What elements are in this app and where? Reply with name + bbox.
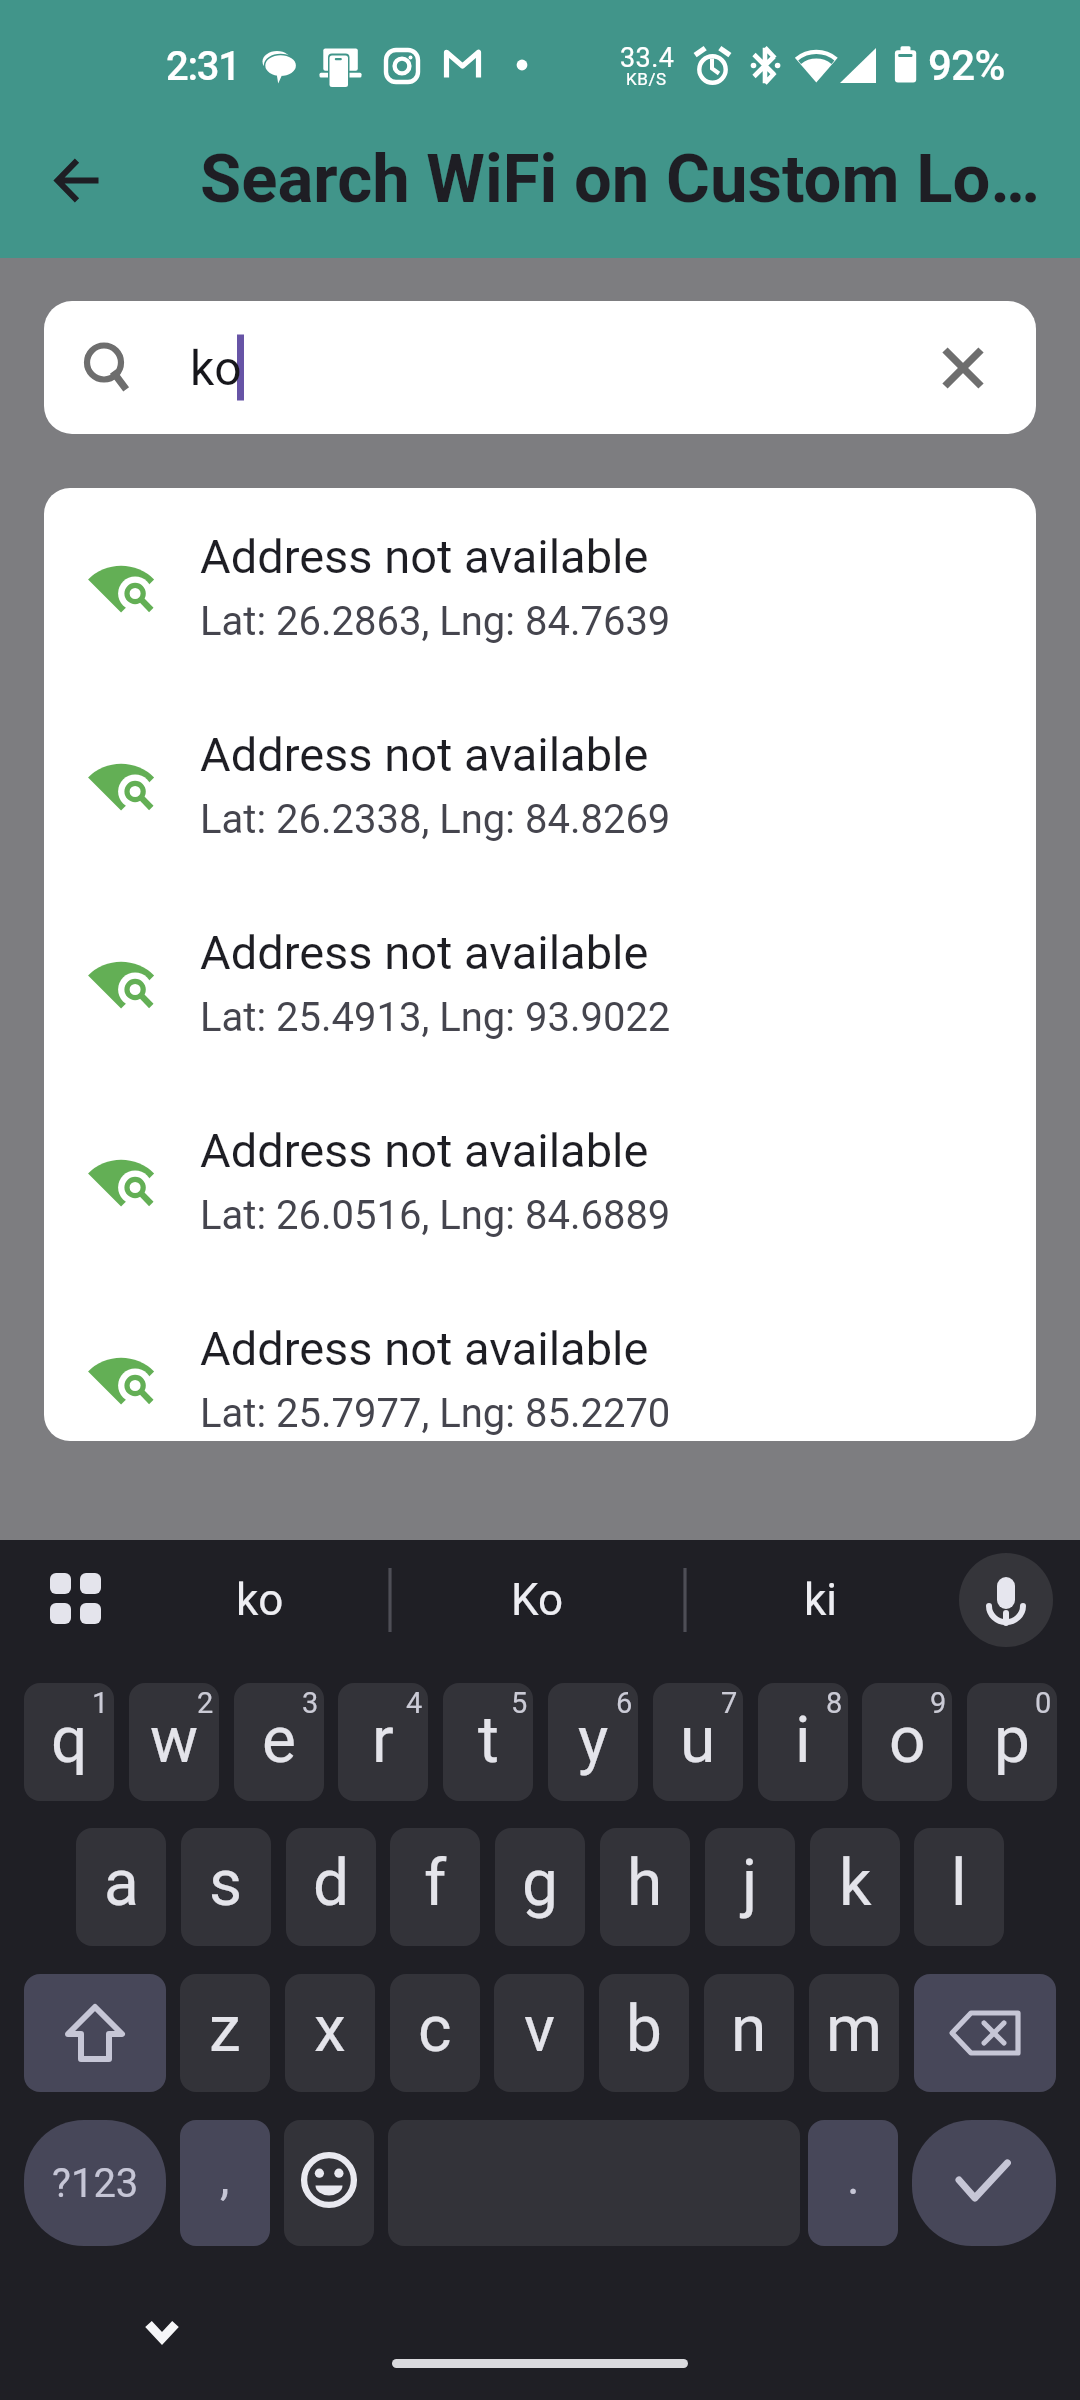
staticText: 5 xyxy=(511,1686,528,1720)
staticText: b xyxy=(626,1992,662,2067)
button[interactable]: y xyxy=(548,1683,638,1801)
button[interactable]: l xyxy=(914,1828,1004,1946)
staticText: d xyxy=(313,1846,350,1921)
staticText: i xyxy=(795,1703,811,1778)
staticText: p xyxy=(994,1703,1030,1778)
button[interactable]: x xyxy=(285,1974,375,2092)
button[interactable]: Backspace xyxy=(914,1974,1056,2092)
button[interactable]: Address not available xyxy=(44,1280,1036,1441)
staticText: h xyxy=(627,1846,663,1921)
button[interactable]: z xyxy=(180,1974,270,2092)
button[interactable]: . xyxy=(808,2120,898,2246)
staticText: 92% xyxy=(928,41,1005,90)
button[interactable]: v xyxy=(494,1974,584,2092)
button[interactable]: Shift xyxy=(24,1974,166,2092)
button[interactable]: Address not available xyxy=(44,1082,1036,1280)
button[interactable]: Address not available xyxy=(44,884,1036,1082)
button[interactable]: q xyxy=(24,1683,114,1801)
button[interactable]: t xyxy=(443,1683,533,1801)
button[interactable]: e xyxy=(234,1683,324,1801)
staticText: 1 xyxy=(92,1686,109,1720)
staticText: Address not available xyxy=(200,529,649,584)
button[interactable]: g xyxy=(495,1828,585,1946)
staticText: 0 xyxy=(1035,1686,1052,1720)
staticText: y xyxy=(578,1703,609,1778)
staticText: 4 xyxy=(406,1686,423,1720)
button[interactable]: f xyxy=(390,1828,480,1946)
button[interactable]: j xyxy=(705,1828,795,1946)
button[interactable]: Emoji xyxy=(284,2120,374,2246)
staticText: v xyxy=(524,1992,555,2067)
button[interactable]: i xyxy=(758,1683,848,1801)
staticText: Address not available xyxy=(200,925,649,980)
button[interactable]: o xyxy=(862,1683,952,1801)
button[interactable]: h xyxy=(600,1828,690,1946)
button[interactable]: a xyxy=(76,1828,166,1946)
button[interactable]: r xyxy=(338,1683,428,1801)
button[interactable]: d xyxy=(286,1828,376,1946)
button[interactable]: u xyxy=(653,1683,743,1801)
button[interactable]: m xyxy=(809,1974,899,2092)
button[interactable]: Enter xyxy=(912,2120,1056,2246)
staticText: j xyxy=(742,1846,758,1921)
button[interactable]: b xyxy=(599,1974,689,2092)
staticText: 6 xyxy=(616,1686,633,1720)
staticText: l xyxy=(951,1846,967,1921)
staticText: w xyxy=(150,1703,199,1778)
staticText: f xyxy=(424,1846,447,1921)
staticText: c xyxy=(418,1992,452,2067)
button[interactable]: p xyxy=(967,1683,1057,1801)
staticText: 9 xyxy=(930,1686,947,1720)
staticText: e xyxy=(262,1703,296,1778)
staticText: Address not available xyxy=(200,727,649,782)
staticText: Address not available xyxy=(200,1123,649,1178)
button[interactable]: s xyxy=(181,1828,271,1946)
staticText: Lat: 26.2863, Lng: 84.7639 xyxy=(200,598,671,645)
button[interactable]: , xyxy=(180,2120,270,2246)
button[interactable]: Clear search xyxy=(908,313,1018,423)
staticText: Search WiFi on Custom Lo… xyxy=(200,140,1040,219)
staticText: g xyxy=(522,1846,558,1921)
button[interactable]: w xyxy=(129,1683,219,1801)
staticText: Lat: 25.4913, Lng: 93.9022 xyxy=(200,994,671,1041)
staticText: m xyxy=(826,1992,883,2067)
staticText: r xyxy=(372,1703,394,1778)
staticText: KB/S xyxy=(626,69,667,89)
button[interactable]: Voice input xyxy=(959,1553,1053,1647)
staticText: a xyxy=(104,1846,139,1921)
button[interactable]: n xyxy=(704,1974,794,2092)
staticText: 8 xyxy=(826,1686,843,1720)
button[interactable]: c xyxy=(390,1974,480,2092)
staticText: ki xyxy=(804,1574,837,1626)
button[interactable]: Hide keyboard xyxy=(114,2285,210,2381)
button[interactable]: ko xyxy=(44,301,1036,434)
staticText: 33.4 xyxy=(620,42,675,74)
staticText: o xyxy=(889,1703,926,1778)
staticText: s xyxy=(209,1846,243,1921)
staticText: . xyxy=(847,2149,860,2205)
staticText: x xyxy=(314,1992,346,2067)
button[interactable]: ?123 xyxy=(24,2120,166,2246)
staticText: n xyxy=(731,1992,767,2067)
button[interactable]: Address not available xyxy=(44,488,1036,686)
staticText: 7 xyxy=(721,1686,738,1720)
staticText: Ko xyxy=(511,1574,564,1626)
staticText: Lat: 26.0516, Lng: 84.6889 xyxy=(200,1192,671,1239)
button[interactable]: ki xyxy=(685,1540,955,1660)
button[interactable]: Ko xyxy=(390,1540,685,1660)
staticText: z xyxy=(209,1992,241,2067)
staticText: 2:31 xyxy=(166,43,240,90)
button[interactable]: Address not available xyxy=(44,686,1036,884)
staticText: , xyxy=(220,2149,230,2205)
staticText: 2 xyxy=(197,1686,214,1720)
button[interactable]: ko xyxy=(130,1540,390,1660)
staticText: u xyxy=(680,1703,716,1778)
button[interactable]: Navigate up xyxy=(29,133,125,229)
button[interactable]: k xyxy=(810,1828,900,1946)
staticText: k xyxy=(839,1846,872,1921)
staticText: ?123 xyxy=(52,2160,139,2207)
staticText: t xyxy=(478,1703,499,1778)
staticText: ko xyxy=(190,340,242,396)
staticText: Lat: 26.2338, Lng: 84.8269 xyxy=(200,796,671,843)
